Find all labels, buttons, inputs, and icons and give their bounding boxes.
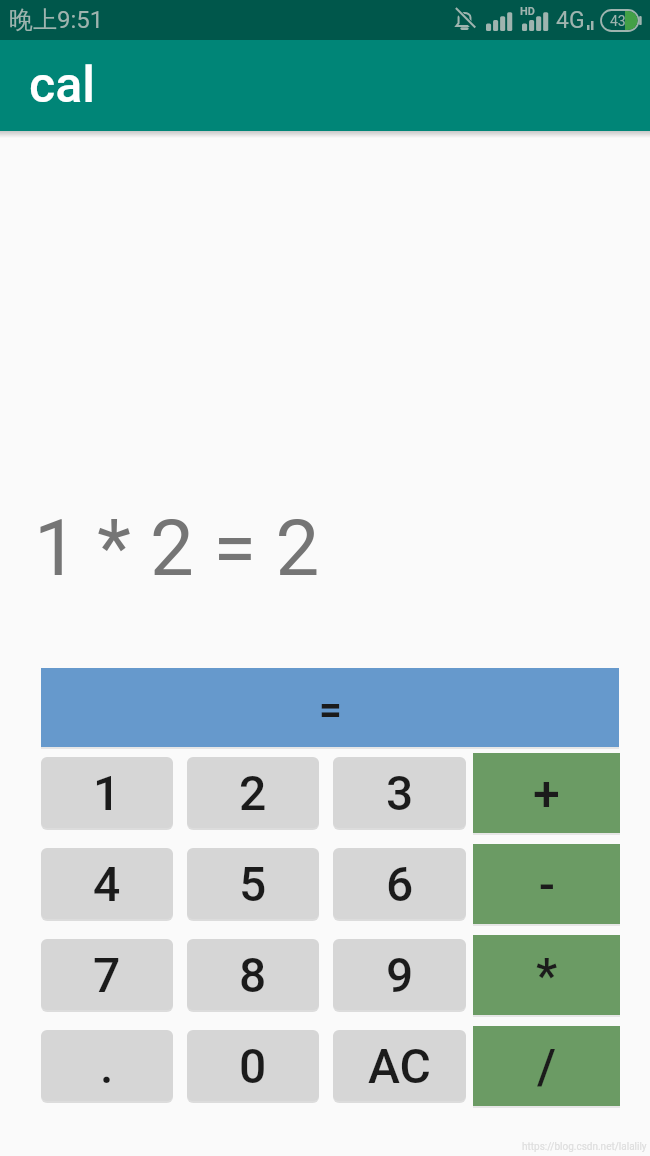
staticText: - (539, 856, 555, 912)
staticText: 1 (93, 765, 121, 821)
button[interactable]: 9 (333, 939, 466, 1010)
staticText: * (536, 947, 558, 1003)
button[interactable]: 7 (41, 939, 173, 1010)
staticText: 43 (610, 13, 626, 29)
button[interactable]: . (41, 1030, 173, 1101)
staticText: + (533, 765, 560, 821)
staticText: https://blog.csdn.net/lalalily (522, 1141, 647, 1153)
staticText: 2 (239, 765, 267, 821)
button[interactable]: 8 (187, 939, 319, 1010)
staticText: 1 * 2 = 2 (34, 503, 320, 594)
button[interactable]: * (473, 935, 620, 1015)
staticText: cal (29, 56, 96, 115)
staticText: 4 (93, 856, 121, 912)
staticText: 4G (556, 7, 585, 34)
button[interactable]: 1 (41, 757, 173, 828)
staticText: 0 (239, 1038, 267, 1094)
button[interactable]: + (473, 753, 620, 833)
button[interactable]: 6 (333, 848, 466, 919)
staticText: 3 (386, 765, 414, 821)
button[interactable]: 4 (41, 848, 173, 919)
staticText: 7 (93, 947, 121, 1003)
staticText: 5 (239, 856, 267, 912)
button[interactable]: - (473, 844, 620, 924)
staticText: = (319, 686, 342, 733)
button[interactable]: = (41, 668, 619, 747)
button[interactable]: 5 (187, 848, 319, 919)
button[interactable]: 3 (333, 757, 466, 828)
staticText: 6 (386, 856, 414, 912)
staticText: 8 (239, 947, 267, 1003)
staticText: 晚上9:51 (9, 5, 104, 35)
staticText: / (537, 1038, 557, 1094)
staticText: 9 (386, 947, 414, 1003)
staticText: . (100, 1038, 114, 1094)
button[interactable]: / (473, 1026, 620, 1106)
button[interactable]: AC (333, 1030, 466, 1101)
button[interactable]: 2 (187, 757, 319, 828)
staticText: AC (368, 1038, 431, 1094)
staticText: HD (520, 5, 535, 18)
button[interactable]: 0 (187, 1030, 319, 1101)
